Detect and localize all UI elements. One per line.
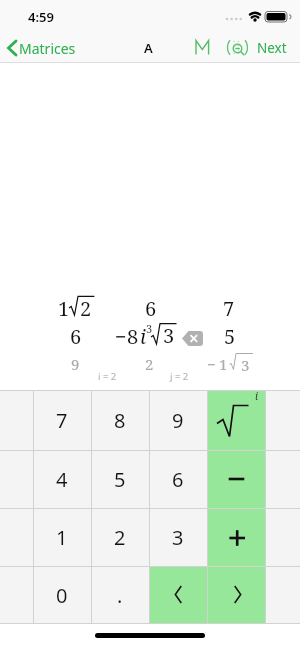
button[interactable]: [226, 37, 250, 59]
button[interactable]: [149, 508, 207, 566]
staticText: j = 2: [170, 370, 189, 383]
staticText: i = 2: [98, 370, 117, 383]
staticText: A: [144, 39, 153, 57]
staticText: 8: [127, 323, 139, 350]
staticText: 9: [71, 354, 80, 374]
button[interactable]: [33, 390, 91, 450]
button[interactable]: [149, 390, 207, 450]
button[interactable]: [181, 330, 204, 347]
button[interactable]: [91, 508, 149, 566]
staticText: 0: [56, 582, 68, 609]
staticText: 9: [172, 407, 184, 434]
staticText: 6: [172, 466, 184, 493]
button[interactable]: [33, 450, 91, 508]
staticText: 7: [223, 295, 235, 322]
button[interactable]: [33, 566, 91, 623]
button[interactable]: [207, 450, 265, 508]
staticText: 4:59: [28, 8, 54, 26]
staticText: 3: [163, 322, 175, 349]
staticText: 5: [114, 466, 126, 493]
button[interactable]: [91, 566, 149, 623]
button[interactable]: Next: [212, 28, 300, 68]
staticText: 2: [114, 524, 126, 551]
button[interactable]: [149, 450, 207, 508]
button[interactable]: [193, 38, 213, 58]
staticText: i: [255, 389, 259, 403]
staticText: Next: [257, 39, 287, 57]
staticText: 1: [58, 295, 70, 322]
button[interactable]: [33, 508, 91, 566]
button[interactable]: [207, 508, 265, 566]
button[interactable]: [207, 566, 265, 623]
staticText: 3: [241, 355, 250, 375]
staticText: i: [140, 323, 147, 350]
button[interactable]: [91, 450, 149, 508]
staticText: 3: [172, 524, 184, 551]
staticText: −: [115, 323, 127, 350]
button[interactable]: [149, 566, 207, 623]
staticText: 6: [145, 295, 157, 322]
staticText: 1: [219, 354, 228, 374]
staticText: 8: [114, 407, 126, 434]
staticText: .: [117, 582, 123, 609]
staticText: 3: [146, 321, 153, 336]
button[interactable]: [207, 390, 265, 450]
staticText: 2: [145, 354, 154, 374]
staticText: 6: [70, 323, 82, 350]
button[interactable]: Matrices: [4, 36, 82, 60]
staticText: 2: [80, 295, 92, 322]
staticText: 5: [224, 323, 236, 350]
button[interactable]: [91, 390, 149, 450]
staticText: Matrices: [19, 39, 76, 58]
staticText: 1: [56, 524, 68, 551]
staticText: 7: [56, 407, 68, 434]
staticText: −: [207, 354, 216, 374]
staticText: 4: [56, 466, 68, 493]
